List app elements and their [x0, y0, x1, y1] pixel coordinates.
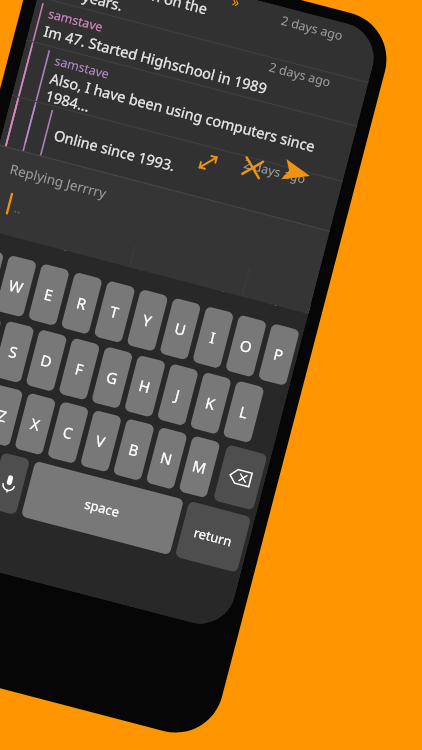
button[interactable]: Comment thread reply screen [0, 0, 422, 750]
